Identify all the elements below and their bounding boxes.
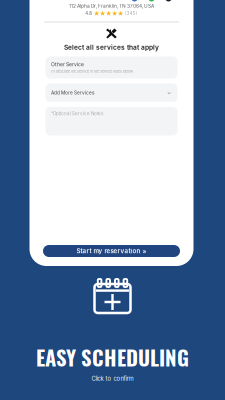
staticText: 4.8: [85, 11, 92, 16]
staticText: Add More Services: [51, 90, 94, 96]
staticText: ⌄: [166, 87, 172, 96]
staticText: Other Service: [51, 61, 84, 67]
staticText: Select all services that apply: [64, 43, 159, 51]
staticText: *Optional Service Notes: [51, 111, 103, 116]
staticText: EASY SCHEDULING: [36, 342, 189, 372]
staticText: ★★★★★: [93, 9, 123, 17]
button[interactable]: Add More Services: [45, 83, 177, 102]
button[interactable]: *Optional Service Notes: [45, 107, 177, 135]
button[interactable]: Start my reservation »: [43, 245, 180, 257]
staticText: (345): [125, 11, 138, 16]
staticText: I'll describe the service in the service…: [51, 69, 133, 74]
staticText: Start my reservation »: [76, 247, 146, 255]
button[interactable]: Other Service: [45, 56, 177, 78]
staticText: Click to confirm: [91, 375, 133, 382]
staticText: 112 Alpha Dr, Franklin, TN 37064, USA: [69, 3, 154, 9]
